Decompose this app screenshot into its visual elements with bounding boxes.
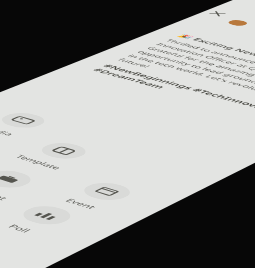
staticText: 🎉 Exciting News! [175,33,255,59]
button[interactable]: Close [205,10,230,18]
button[interactable]: Add media [0,106,66,142]
button[interactable]: Use template [2,136,109,174]
staticText: #NewBeginnings #TechInnovation #DreamTea… [90,63,255,120]
staticText: Thrilled to announce my new role as Chie… [115,38,255,113]
button[interactable]: Share a document [0,163,54,204]
staticText: Media [0,125,17,137]
staticText: Template [13,153,65,171]
staticText: Event [63,197,100,210]
staticText: Document [0,181,11,201]
staticText: Poll [6,223,34,234]
button[interactable]: Create event [43,175,154,217]
button[interactable]: Create a poll [0,198,95,242]
